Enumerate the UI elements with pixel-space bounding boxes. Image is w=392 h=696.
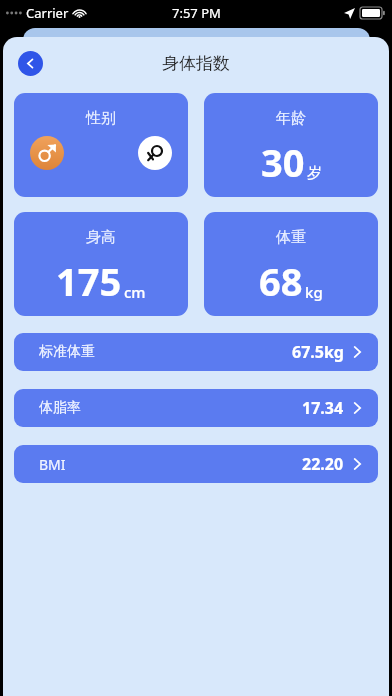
- staticText: BMI: [39, 455, 66, 474]
- staticText: 175: [56, 255, 122, 307]
- staticText: 22.20: [302, 453, 344, 475]
- button[interactable]: 标准体重: [14, 333, 378, 371]
- staticText: 7:57 PM: [172, 4, 221, 22]
- button[interactable]: 体脂率: [14, 389, 378, 427]
- staticText: 岁: [307, 164, 322, 183]
- staticText: kg: [305, 282, 323, 302]
- staticText: 体重: [276, 228, 306, 247]
- button[interactable]: Male: [30, 136, 64, 170]
- button[interactable]: 年龄: [204, 93, 378, 197]
- staticText: 年龄: [276, 109, 306, 128]
- staticText: Carrier: [26, 4, 69, 22]
- button[interactable]: 性别: [14, 93, 188, 197]
- staticText: cm: [124, 282, 146, 302]
- button[interactable]: 体重: [204, 212, 378, 316]
- staticText: 性别: [86, 109, 116, 128]
- staticText: 身高: [86, 228, 116, 247]
- button[interactable]: Female: [138, 136, 172, 170]
- staticText: 17.34: [302, 397, 344, 419]
- staticText: 身体指数: [162, 53, 230, 74]
- staticText: 体脂率: [39, 399, 81, 417]
- staticText: 30: [261, 136, 305, 188]
- staticText: 67.5kg: [292, 341, 344, 363]
- staticText: 68: [259, 255, 303, 307]
- button[interactable]: Back: [18, 51, 43, 76]
- button[interactable]: BMI: [14, 445, 378, 483]
- staticText: 标准体重: [39, 343, 95, 361]
- button[interactable]: 身高: [14, 212, 188, 316]
